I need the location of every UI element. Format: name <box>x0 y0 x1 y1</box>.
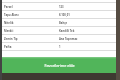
staticText: Tapu Alanı <box>4 13 19 17</box>
staticText: Nitelik <box>4 21 14 25</box>
staticText: Bahçe <box>59 21 68 25</box>
staticText: Zemin Tip <box>4 37 18 41</box>
button[interactable]: Favorilerime ekle <box>2 57 116 73</box>
button[interactable]: Nitelik <box>2 19 116 27</box>
staticText: Parsel <box>4 5 13 9</box>
staticText: Mevkii <box>4 29 14 33</box>
staticText: 123 <box>59 5 64 9</box>
button[interactable]: Parsel <box>2 3 116 11</box>
button[interactable]: Pafta <box>2 43 116 51</box>
button[interactable]: Zemin Tip <box>2 35 116 43</box>
button[interactable]: Tapu Alanı <box>2 11 116 19</box>
button[interactable]: Mevkii <box>2 27 116 35</box>
staticText: Favorilerime ekle <box>44 63 75 68</box>
staticText: Pafta <box>4 45 12 49</box>
staticText: Kandilli Tek <box>59 29 75 33</box>
staticText: Ana Taşınmaz <box>59 37 78 41</box>
staticText: 8.100,01 <box>59 13 70 17</box>
staticText: 1 <box>59 45 61 49</box>
